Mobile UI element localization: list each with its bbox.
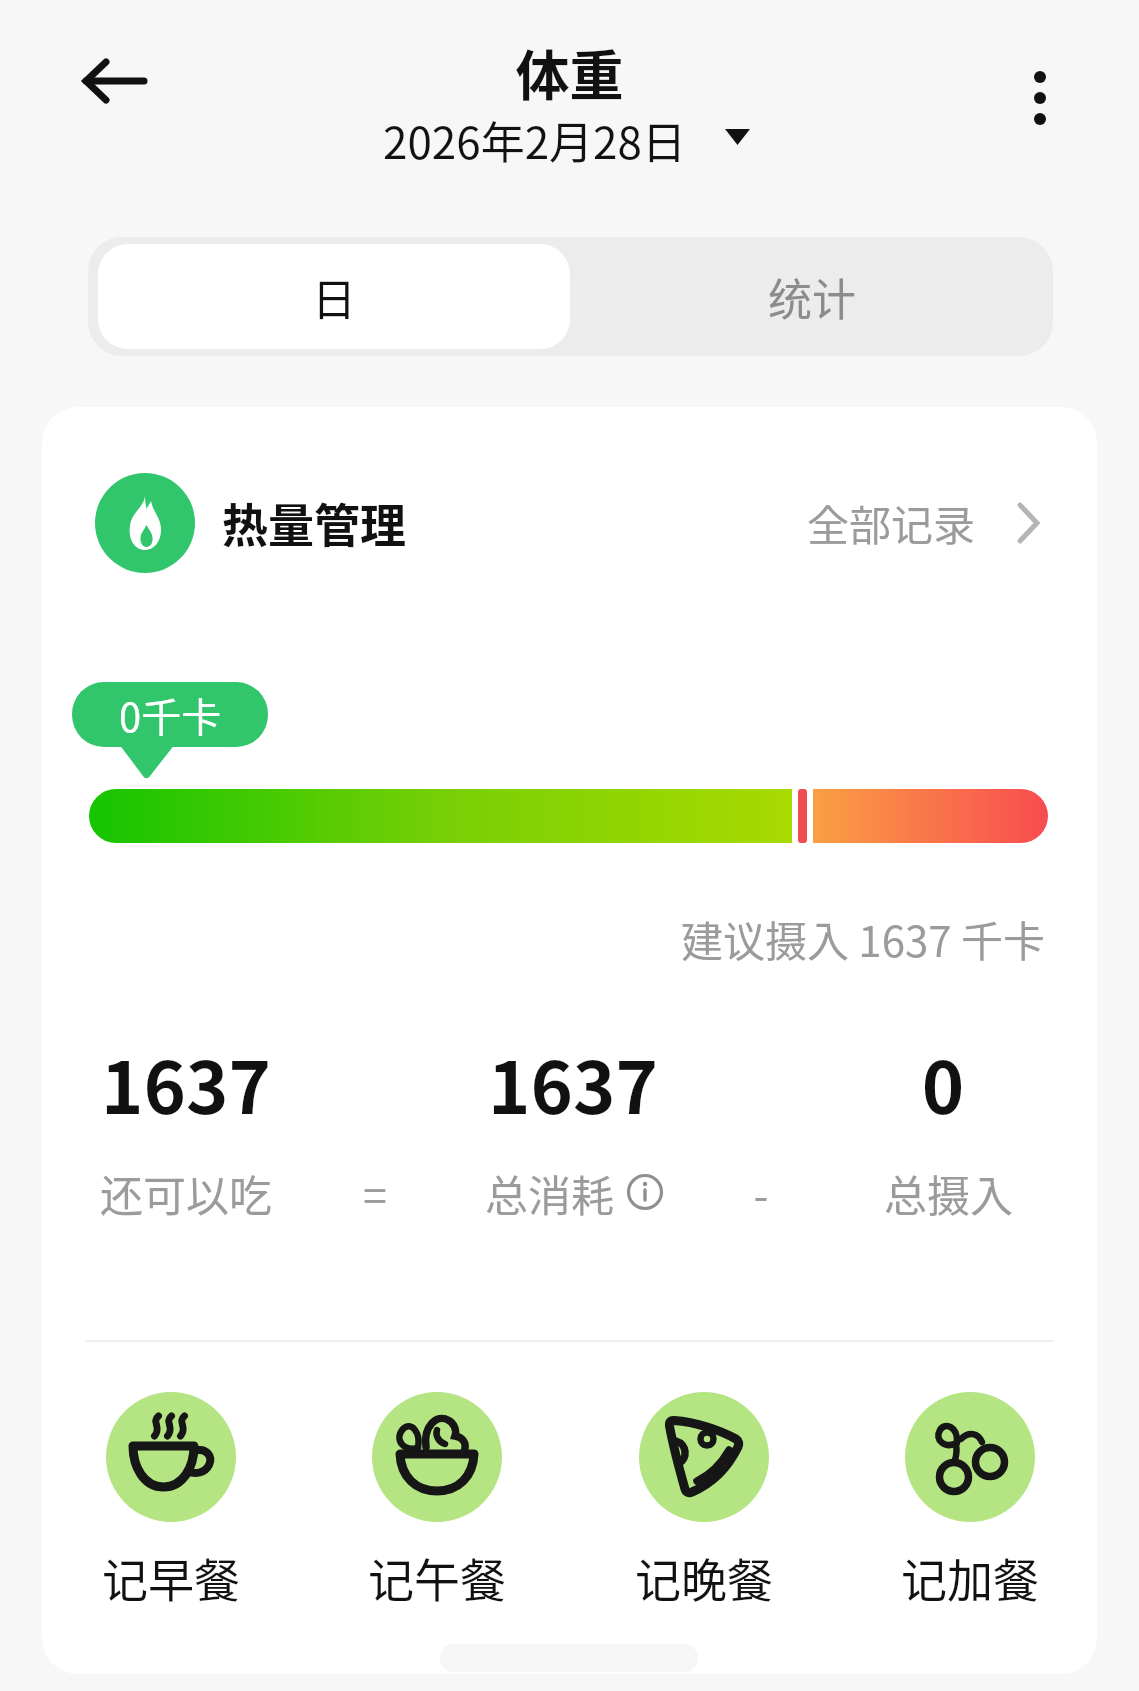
staticText: 1637	[387, 1030, 759, 1134]
staticText: 建议摄入 1637 千卡	[0, 908, 1045, 969]
button[interactable]	[1005, 58, 1075, 138]
staticText: 全部记录	[807, 492, 976, 553]
staticText: 日	[312, 265, 356, 329]
staticText: -	[741, 1162, 781, 1224]
staticText: =	[355, 1162, 395, 1224]
staticText: 1637	[0, 1030, 372, 1134]
staticText: 热量管理	[222, 489, 406, 556]
button[interactable]: 记晚餐	[604, 1544, 804, 1611]
staticText: 总摄入	[884, 1162, 1013, 1224]
staticText: 体重	[0, 33, 1139, 111]
button[interactable]	[70, 48, 160, 114]
button[interactable]	[372, 1392, 502, 1522]
staticText: 还可以吃	[0, 1162, 372, 1224]
button[interactable]: 日	[98, 244, 570, 349]
button[interactable]: 统计	[570, 237, 1053, 356]
staticText: 2026年2月28日	[383, 108, 686, 170]
button[interactable]	[905, 1392, 1035, 1522]
button[interactable]: 记午餐	[337, 1544, 537, 1611]
button[interactable]: 全部记录	[790, 482, 1055, 562]
staticText: 0千卡	[119, 686, 222, 744]
staticText: 统计	[768, 265, 856, 329]
button[interactable]: 记加餐	[870, 1544, 1070, 1611]
button[interactable]	[639, 1392, 769, 1522]
button[interactable]	[106, 1392, 236, 1522]
button[interactable]: 记早餐	[71, 1544, 271, 1611]
staticText: 总消耗	[485, 1162, 614, 1224]
staticText: 0	[757, 1030, 1129, 1134]
button[interactable]: 2026年2月28日	[383, 108, 758, 170]
